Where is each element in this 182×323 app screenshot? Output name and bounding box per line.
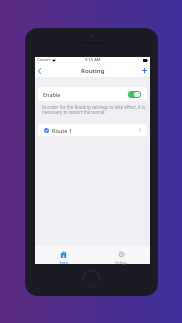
button[interactable]: Back	[35, 64, 43, 77]
staticText: Route 1	[52, 127, 72, 134]
staticText: 9:15 AM	[85, 57, 101, 63]
button[interactable]: Settings	[92, 246, 150, 264]
staticText: Status	[59, 261, 69, 265]
staticText: Enable	[43, 91, 61, 98]
button[interactable]: Enable	[43, 87, 141, 101]
staticText: Settings	[115, 261, 127, 265]
staticText: Carrier	[37, 57, 51, 63]
button[interactable]: Status	[35, 246, 92, 264]
button[interactable]: Route 1	[44, 124, 141, 136]
button[interactable]: Add route	[138, 64, 150, 77]
staticText: Routing	[81, 66, 105, 74]
staticText: In order for the Routing settings to tak…	[42, 104, 146, 115]
